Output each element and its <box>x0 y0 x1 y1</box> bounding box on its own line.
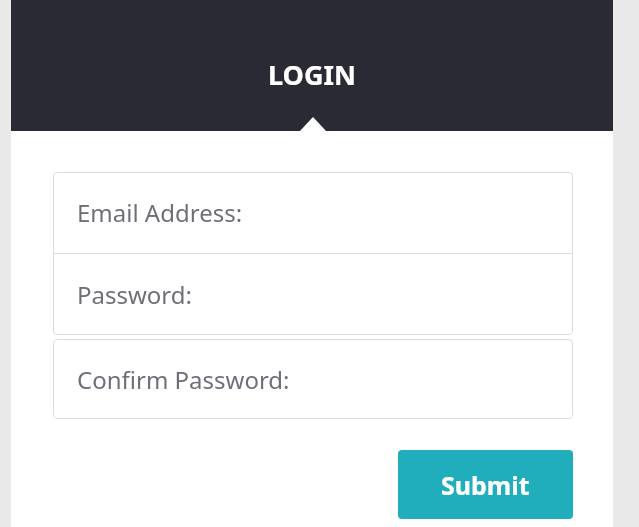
staticText: Confirm Password: <box>77 363 290 396</box>
staticText: Email Address: <box>77 196 243 229</box>
staticText: Password: <box>77 278 192 311</box>
button[interactable]: Submit <box>398 450 573 519</box>
staticText: LOGIN <box>268 56 356 93</box>
button[interactable]: Password: <box>53 254 573 335</box>
button[interactable]: Confirm Password: <box>53 339 573 419</box>
button[interactable]: Email Address: <box>53 172 573 253</box>
staticText: Submit <box>441 468 530 502</box>
